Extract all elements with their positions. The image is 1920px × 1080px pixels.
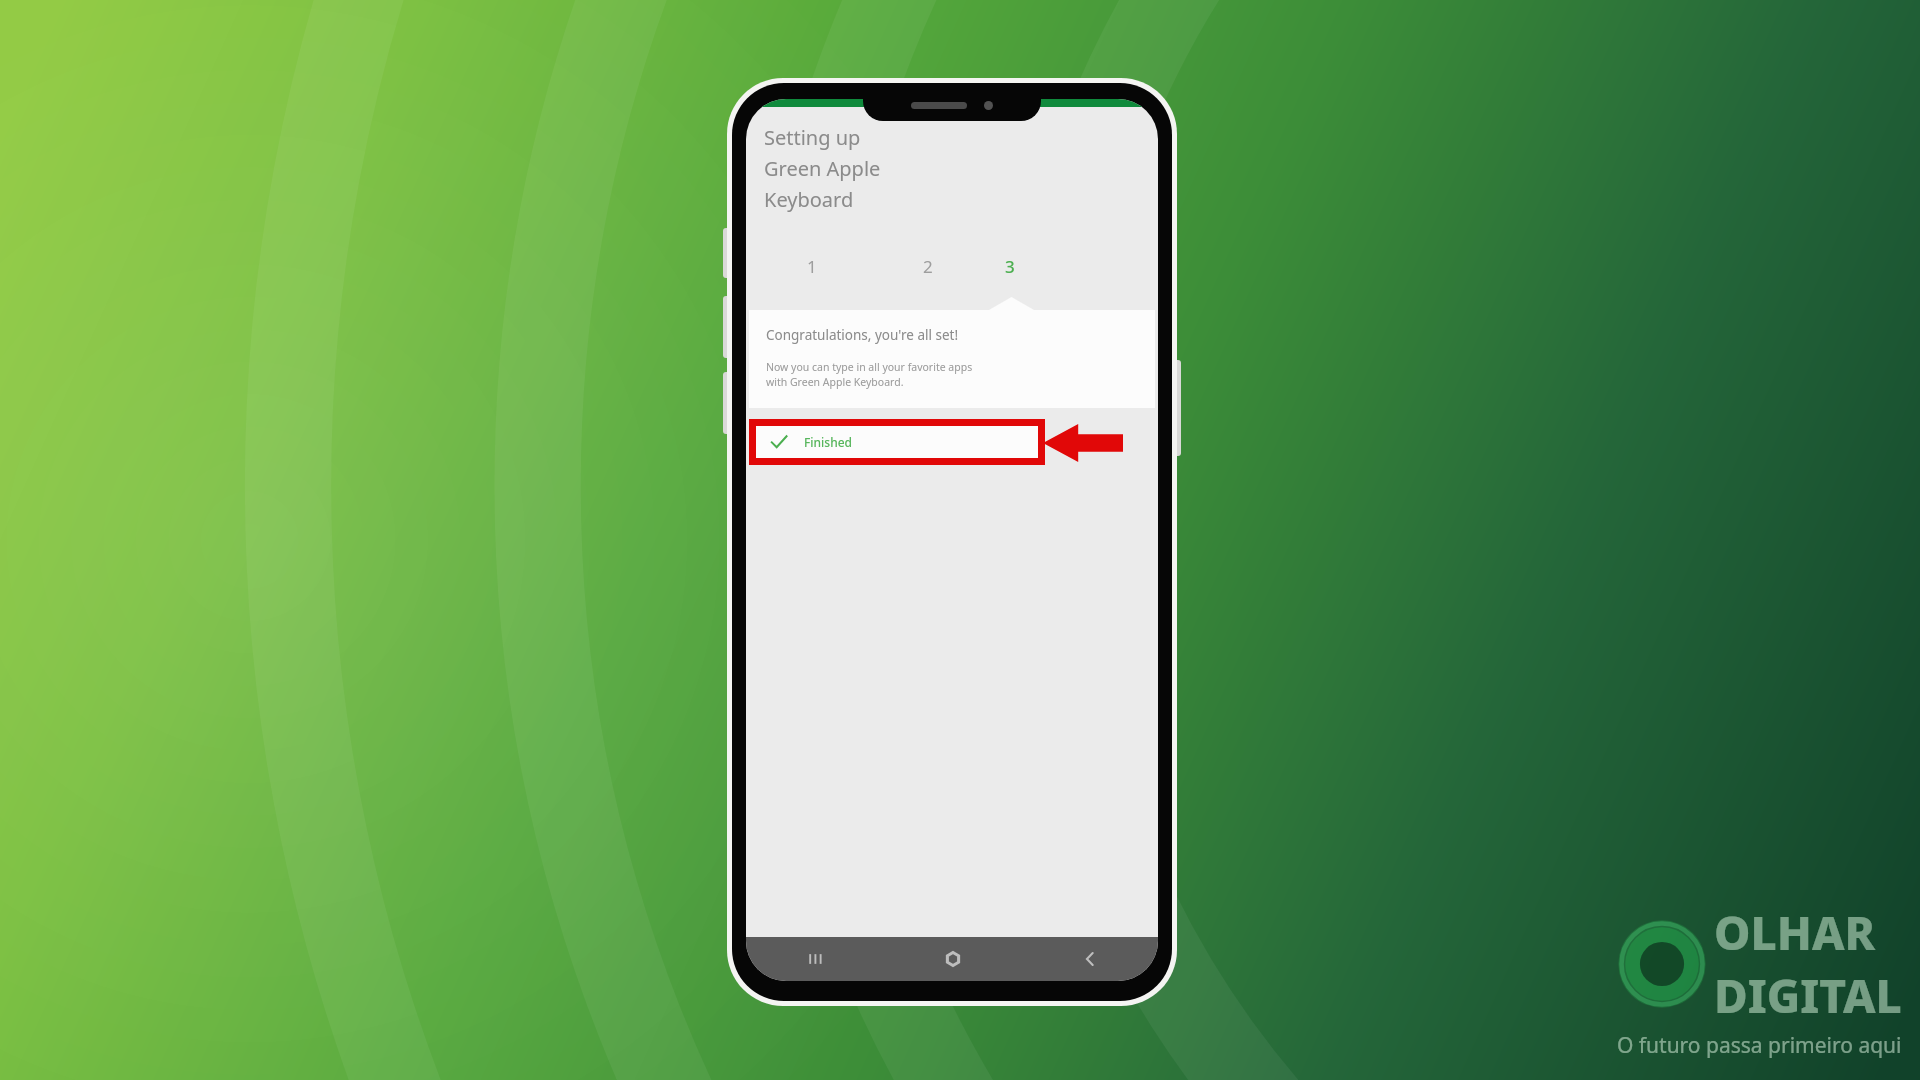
button[interactable]: Back <box>1021 937 1158 981</box>
staticText: Setting up <box>764 124 861 151</box>
button[interactable]: Home <box>884 937 1021 981</box>
staticText: OLHAR <box>1714 901 1876 964</box>
staticText: 2 <box>923 255 933 278</box>
staticText: DIGITAL <box>1714 964 1902 1027</box>
staticText: O futuro passa primeiro aqui <box>1617 1031 1902 1060</box>
button[interactable]: Finished <box>756 426 1038 458</box>
staticText: 1 <box>807 255 817 278</box>
staticText: Green Apple <box>764 155 881 182</box>
button[interactable]: 1 <box>793 251 831 281</box>
button[interactable]: 3 <box>991 251 1029 281</box>
staticText: Finished <box>804 434 853 450</box>
other: Arrow pointing to Finished <box>1043 424 1123 462</box>
staticText: Congratulations, you're all set! <box>766 326 959 344</box>
staticText: Now you can type in all your favorite ap… <box>766 360 973 389</box>
button[interactable]: 2 <box>909 251 947 281</box>
staticText: 3 <box>1005 255 1015 278</box>
button[interactable]: Recent apps <box>746 937 884 981</box>
staticText: Keyboard <box>764 186 854 213</box>
